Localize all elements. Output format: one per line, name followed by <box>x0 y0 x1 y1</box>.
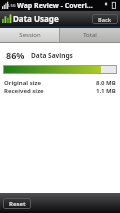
button[interactable]: Reset <box>3 198 31 209</box>
staticText: Reset <box>9 200 26 208</box>
staticText: Data Usage <box>13 13 59 24</box>
staticText: Wap Review - Coveri… <box>17 1 93 11</box>
staticText: Total <box>83 31 97 39</box>
staticText: Received size <box>4 87 44 95</box>
staticText: Data Savings <box>31 51 73 60</box>
staticText: 86% <box>6 49 25 61</box>
staticText: 3.5G <box>7 3 16 8</box>
staticText: 8.0 MB <box>96 79 116 87</box>
staticText: Session <box>19 31 41 39</box>
staticText: Back <box>98 16 112 23</box>
button[interactable]: Total <box>60 28 120 42</box>
button[interactable]: Session <box>0 28 59 42</box>
staticText: 1.1 MB <box>96 87 116 95</box>
staticText: Original size <box>4 79 41 87</box>
button[interactable]: Back <box>92 14 118 24</box>
